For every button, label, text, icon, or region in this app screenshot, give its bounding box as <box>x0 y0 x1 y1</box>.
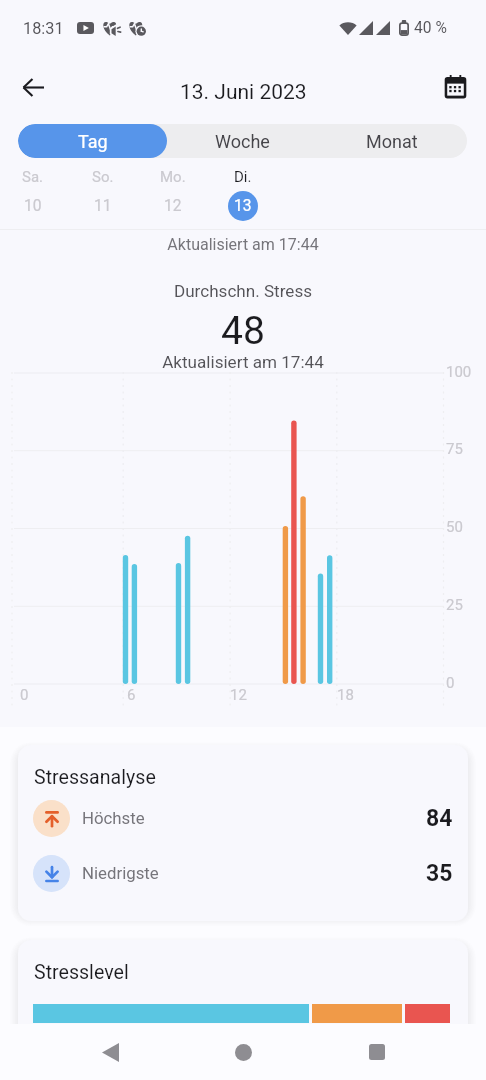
staticText: 40 % <box>414 19 447 37</box>
button[interactable]: Recent apps <box>353 1028 401 1076</box>
button[interactable]: Tag <box>18 124 167 158</box>
staticText: Di. <box>234 168 252 186</box>
staticText: 13 <box>234 197 252 215</box>
staticText: Woche <box>215 131 270 152</box>
staticText: Niedrigste <box>82 863 159 883</box>
staticText: 84 <box>426 805 453 832</box>
staticText: 11 <box>94 197 112 215</box>
button[interactable]: Woche <box>167 124 317 158</box>
staticText: Durchschn. Stress <box>0 281 486 301</box>
button[interactable]: Sa. <box>8 168 58 221</box>
staticText: 50 <box>446 518 463 536</box>
staticText: 18:31 <box>23 19 64 38</box>
button[interactable]: Back <box>86 1028 134 1076</box>
staticText: Aktualisiert am 17:44 <box>0 352 486 372</box>
staticText: 12 <box>164 197 182 215</box>
staticText: 0 <box>446 674 455 692</box>
staticText: Aktualisiert am 17:44 <box>0 235 486 254</box>
staticText: Stressanalyse <box>34 766 156 789</box>
staticText: Tag <box>78 131 108 152</box>
button[interactable]: Back <box>13 67 53 107</box>
staticText: 0 <box>20 686 29 704</box>
staticText: 10 <box>24 197 42 215</box>
staticText: Mo. <box>160 168 186 186</box>
staticText: 100 <box>446 363 472 381</box>
button[interactable]: So. <box>78 168 128 221</box>
staticText: Sa. <box>22 168 44 186</box>
staticText: 6 <box>127 686 136 704</box>
button[interactable]: Home <box>219 1028 267 1076</box>
button[interactable]: Niedrigste <box>33 854 453 892</box>
staticText: 13. Juni 2023 <box>180 80 307 105</box>
staticText: So. <box>92 168 114 186</box>
staticText: 12 <box>230 686 247 704</box>
staticText: 75 <box>446 440 463 458</box>
staticText: Monat <box>366 131 418 152</box>
button[interactable]: Di. <box>218 168 268 221</box>
button[interactable]: Monat <box>317 124 467 158</box>
staticText: 48 <box>0 308 486 354</box>
button[interactable]: Calendar <box>435 67 475 107</box>
staticText: 18 <box>337 686 354 704</box>
staticText: Höchste <box>82 808 145 828</box>
button[interactable]: Mo. <box>148 168 198 221</box>
staticText: 25 <box>446 596 463 614</box>
staticText: 35 <box>426 860 453 887</box>
button[interactable]: Höchste <box>33 799 453 837</box>
staticText: Stresslevel <box>34 961 129 984</box>
